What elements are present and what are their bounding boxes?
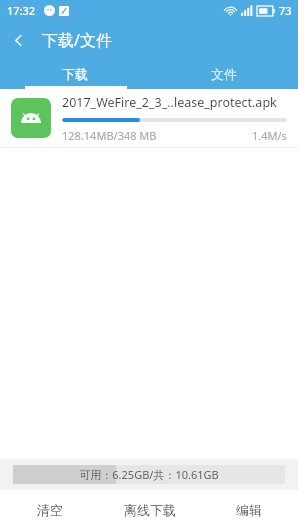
staticText: 下载 [62,66,88,82]
button[interactable]: 2017_WeFire_2_3_..lease_protect.apk [0,89,298,148]
button[interactable]: 离线下载 [100,490,199,529]
staticText: 1.4M/s [252,128,287,143]
button[interactable]: 编辑 [199,490,298,529]
button[interactable]: 下载 [0,58,149,89]
staticText: 17:32 [7,3,36,18]
staticText: 可用：6.25GB/共：10.61GB [79,467,219,482]
button[interactable]: 文件 [149,58,298,89]
staticText: 2017_WeFire_2_3_..lease_protect.apk [62,94,277,111]
staticText: 128.14MB/348 MB [62,128,157,143]
staticText: 编辑 [236,502,262,518]
staticText: 离线下载 [124,502,176,518]
staticText: 下载/文件 [42,29,112,51]
button[interactable]: 清空 [0,490,100,529]
button[interactable]: Back [0,22,36,58]
staticText: 73 [279,3,292,18]
staticText: 文件 [211,66,237,82]
staticText: 清空 [37,502,63,518]
